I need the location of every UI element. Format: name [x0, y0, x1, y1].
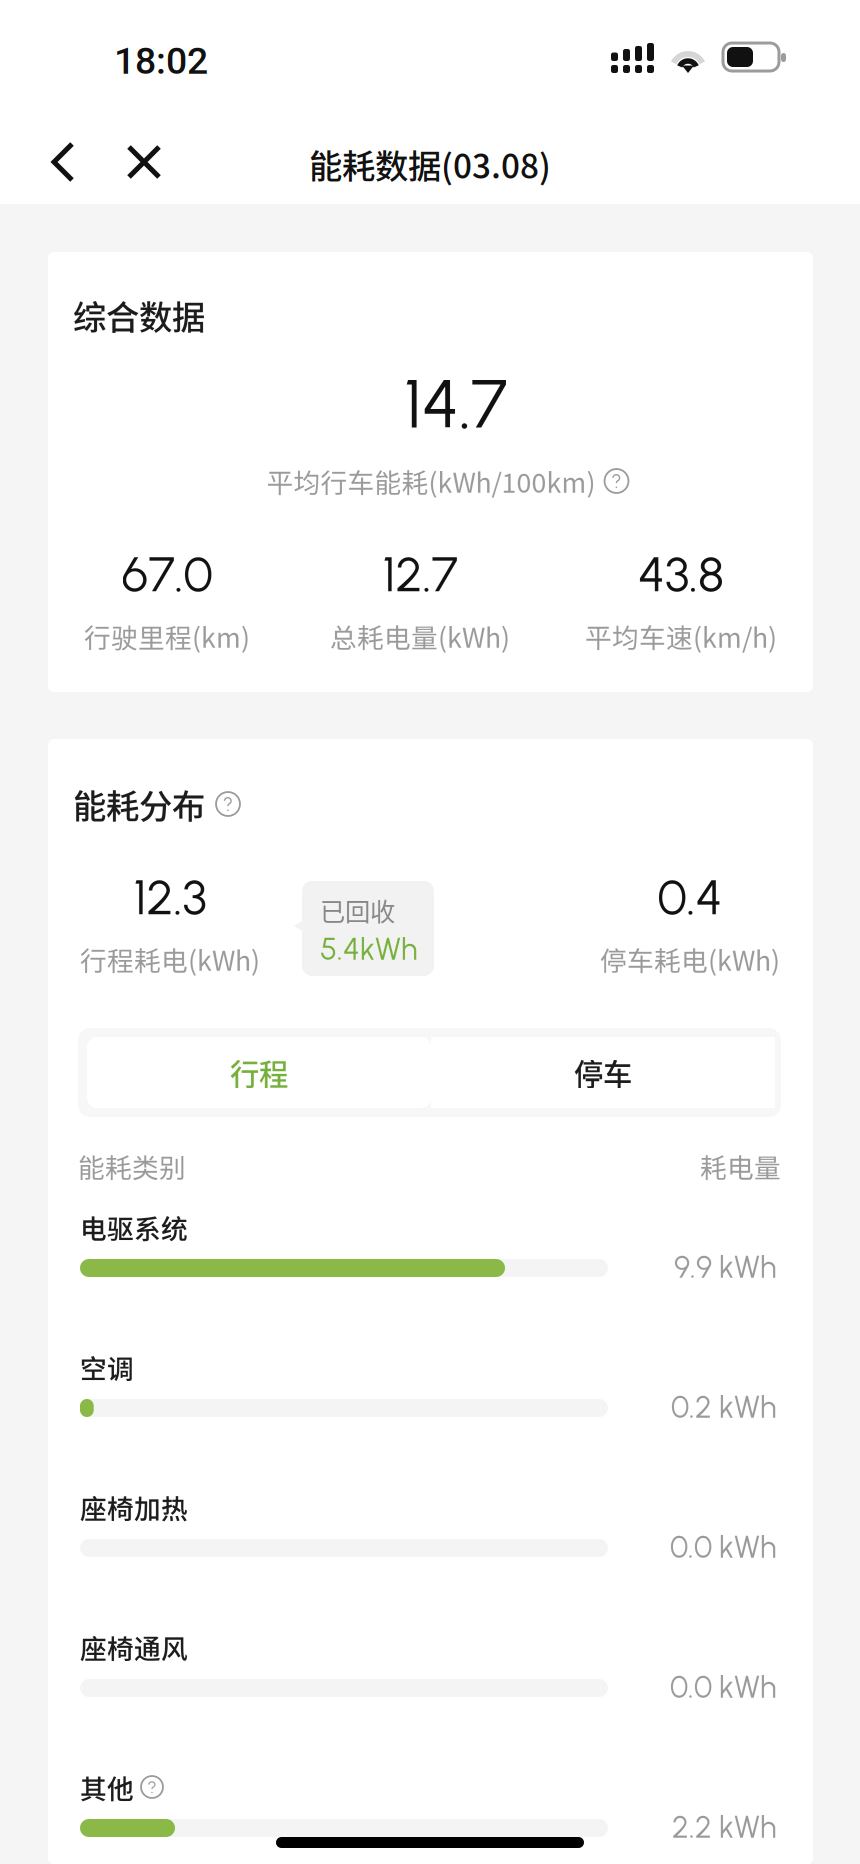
staticText: 耗电量 [700, 1147, 781, 1185]
staticText: 5.4kWh [320, 931, 417, 967]
staticText: 能耗分布 [73, 780, 205, 828]
staticText: 其他 [80, 1768, 134, 1806]
staticText: 电驱系统 [80, 1208, 188, 1246]
staticText: 9.9 kWh [674, 1249, 776, 1285]
staticText: 座椅通风 [80, 1628, 188, 1666]
staticText: 0.0 kWh [670, 1529, 776, 1565]
staticText: 行程耗电(kWh) [80, 940, 260, 978]
staticText: 平均行车能耗(kWh/100km) [266, 462, 595, 500]
button[interactable]: Back [28, 127, 98, 197]
staticText: 67.0 [121, 544, 212, 604]
staticText: ? [223, 792, 233, 816]
staticText: 0.0 kWh [670, 1669, 776, 1705]
staticText: 0.4 [657, 867, 722, 927]
button[interactable]: 停车 [431, 1037, 775, 1108]
staticText: 座椅加热 [80, 1488, 188, 1526]
staticText: 综合数据 [73, 291, 205, 339]
staticText: 能耗类别 [78, 1147, 186, 1185]
staticText: 行驶里程(km) [84, 617, 250, 655]
staticText: 平均车速(km/h) [585, 617, 777, 655]
staticText: 总耗电量(kWh) [330, 617, 510, 655]
staticText: 行程 [230, 1051, 288, 1094]
staticText: 已回收 [320, 892, 395, 928]
staticText: 18:02 [114, 39, 208, 83]
staticText: ? [147, 1776, 156, 1798]
staticText: 0.2 kWh [671, 1389, 776, 1425]
staticText: 43.8 [638, 544, 724, 604]
button[interactable]: 行程 [87, 1037, 431, 1108]
staticText: 停车 [574, 1051, 632, 1094]
staticText: 2.2 kWh [672, 1809, 776, 1845]
staticText: 停车耗电(kWh) [600, 940, 780, 978]
button[interactable]: Close [109, 127, 179, 197]
staticText: 12.3 [133, 867, 206, 927]
staticText: 空调 [80, 1348, 134, 1386]
staticText: 14.7 [404, 363, 507, 445]
staticText: 能耗数据(03.08) [309, 140, 551, 188]
staticText: 12.7 [382, 544, 457, 604]
staticText: ? [611, 469, 621, 493]
